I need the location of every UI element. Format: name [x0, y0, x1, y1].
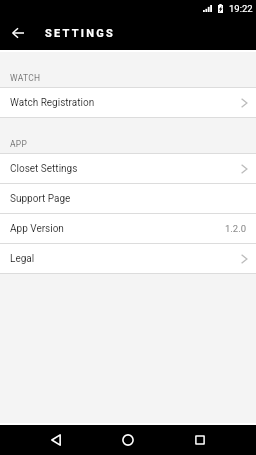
button[interactable]: Recent apps: [185, 425, 215, 455]
staticText: 1.2.0: [225, 223, 247, 234]
button[interactable]: Closet Settings: [0, 154, 256, 184]
button[interactable]: Back: [0, 16, 35, 50]
button[interactable]: Support Page: [0, 184, 256, 214]
staticText: Support Page: [10, 193, 71, 205]
button[interactable]: Legal: [0, 244, 256, 274]
staticText: Legal: [10, 253, 35, 265]
staticText: WATCH: [10, 73, 41, 83]
staticText: SETTINGS: [45, 27, 116, 40]
staticText: 19:22: [229, 3, 253, 14]
button[interactable]: Home: [113, 425, 143, 455]
button[interactable]: Watch Registration: [0, 88, 256, 118]
staticText: APP: [10, 139, 28, 149]
staticText: Closet Settings: [10, 163, 78, 175]
staticText: App Version: [10, 223, 64, 235]
button[interactable]: App Version: [0, 214, 256, 244]
staticText: Watch Registration: [10, 97, 95, 109]
button[interactable]: Back: [41, 425, 71, 455]
